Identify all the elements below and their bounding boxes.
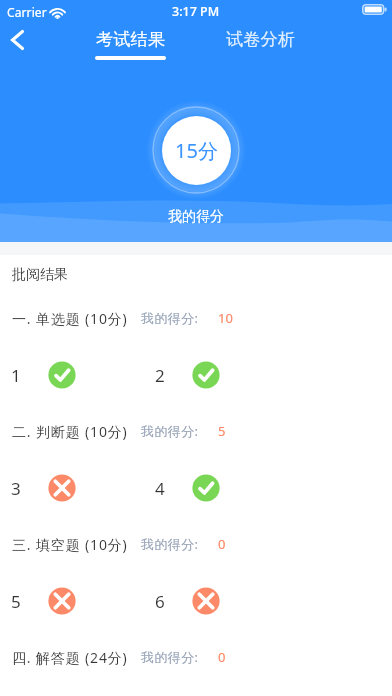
staticText: 考试结果 — [96, 29, 166, 50]
staticText: 4 — [155, 477, 165, 500]
staticText: 我的得分: — [141, 422, 199, 440]
staticText: 3 — [11, 477, 21, 500]
staticText: 试卷分析 — [226, 29, 296, 50]
staticText: 0 — [218, 535, 226, 553]
staticText: 我的得分: — [141, 648, 199, 666]
staticText: Carrier — [7, 4, 47, 20]
button[interactable]: 四. 解答题 (24分) — [0, 629, 392, 685]
staticText: 我的得分: — [141, 535, 199, 553]
button[interactable]: 试卷分析 — [216, 22, 306, 64]
staticText: 批阅结果 — [12, 266, 68, 284]
staticText: 6 — [155, 590, 165, 613]
staticText: 10 — [218, 309, 233, 327]
button[interactable]: 三. 填空题 (10分) — [0, 516, 392, 572]
button[interactable]: 考试结果 — [85, 22, 175, 64]
button[interactable]: Back — [0, 22, 38, 64]
staticText: 三. 填空题 (10分) — [12, 535, 128, 554]
staticText: 我的得分 — [168, 208, 224, 226]
button[interactable]: 2 — [144, 347, 288, 403]
staticText: 二. 判断题 (10分) — [12, 422, 128, 441]
button[interactable]: 一. 单选题 (10分) — [0, 290, 392, 346]
button[interactable]: 5 — [0, 573, 144, 629]
staticText: 15分 — [175, 137, 218, 164]
staticText: 我的得分: — [141, 309, 199, 327]
staticText: 1 — [11, 364, 21, 387]
button[interactable]: 3 — [0, 460, 144, 516]
button[interactable]: 4 — [144, 460, 288, 516]
staticText: 5 — [11, 590, 21, 613]
staticText: 5 — [218, 422, 226, 440]
button[interactable]: 1 — [0, 347, 144, 403]
staticText: 0 — [218, 648, 226, 666]
staticText: 一. 单选题 (10分) — [12, 309, 128, 328]
button[interactable]: 二. 判断题 (10分) — [0, 403, 392, 459]
staticText: 3:17 PM — [172, 3, 220, 20]
staticText: 四. 解答题 (24分) — [12, 648, 128, 667]
button[interactable]: 6 — [144, 573, 288, 629]
staticText: 2 — [155, 364, 165, 387]
